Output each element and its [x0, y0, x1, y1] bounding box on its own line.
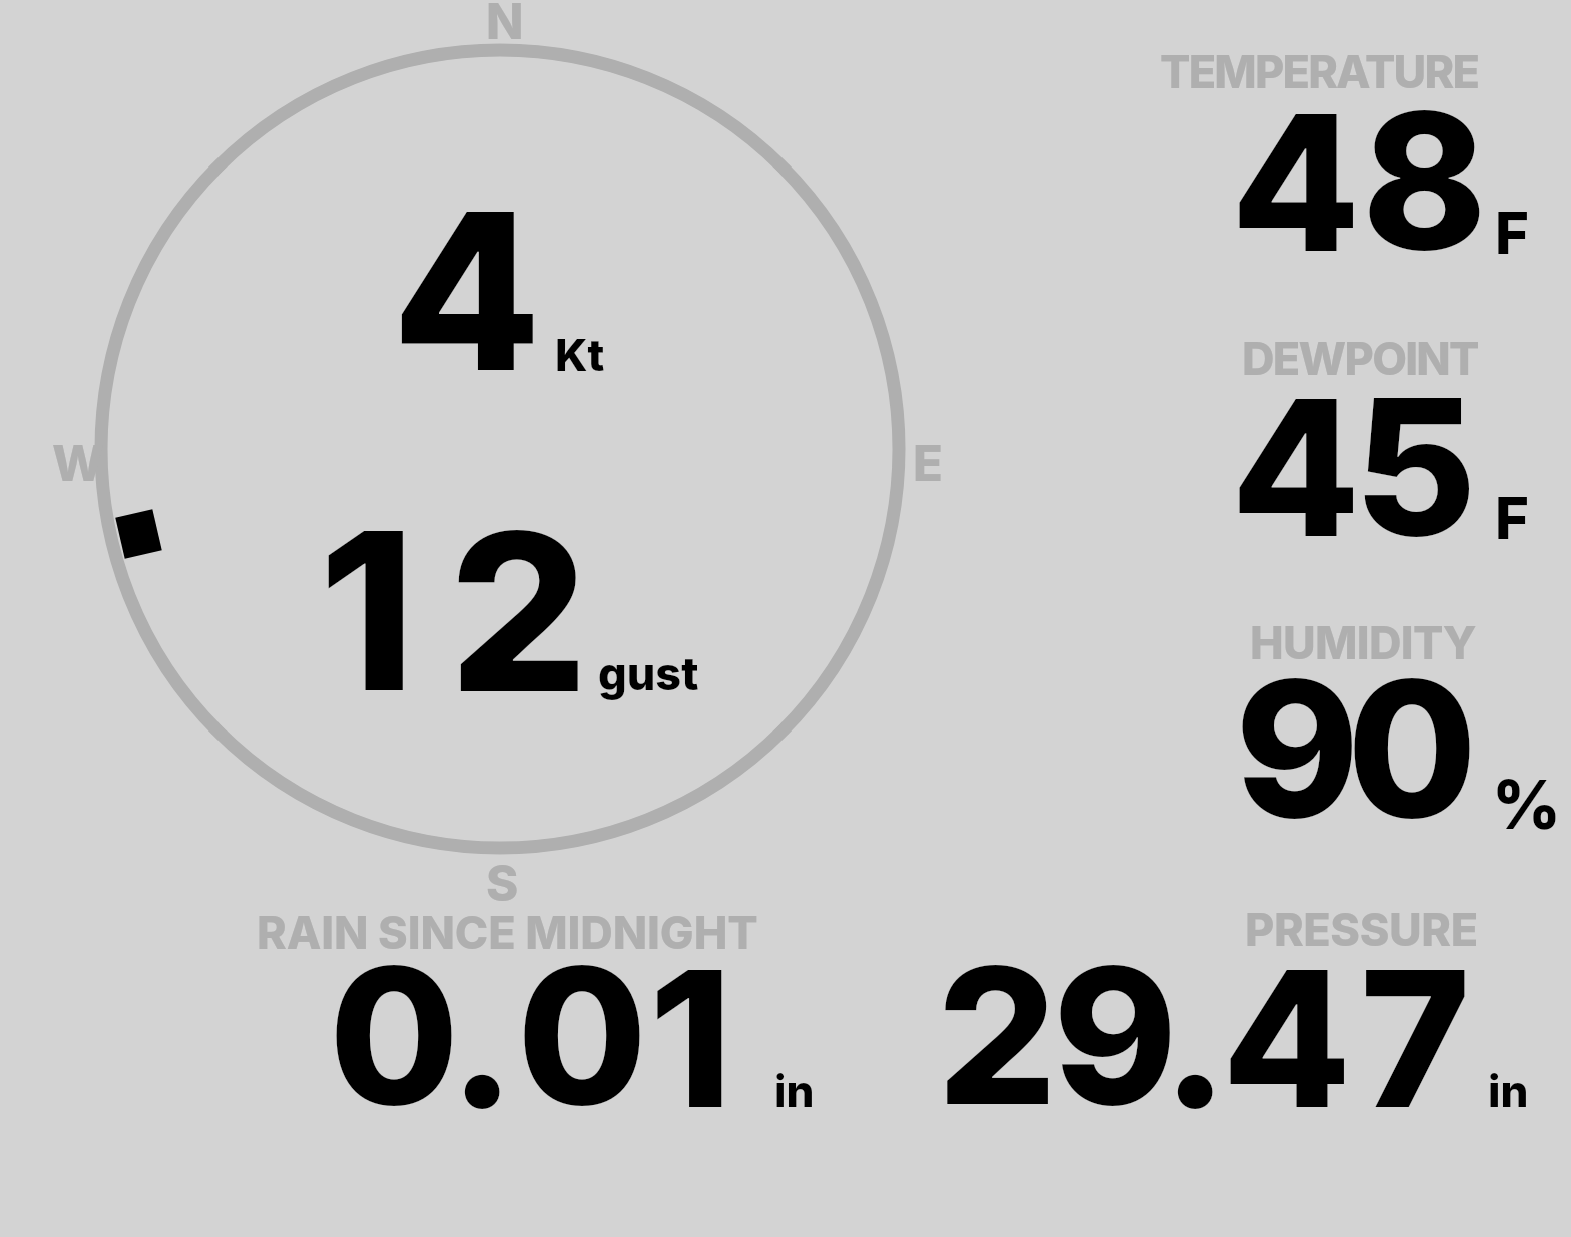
staticText: in: [1488, 1064, 1529, 1117]
staticText: %: [1492, 764, 1561, 845]
staticText: 2: [937, 922, 1057, 1149]
staticText: 4: [392, 160, 542, 423]
staticText: .: [449, 925, 516, 1152]
button[interactable]: Humidity 90 percent: [1100, 600, 1571, 860]
staticText: 0: [1347, 635, 1478, 862]
staticText: 7: [1360, 925, 1471, 1152]
staticText: RAIN SINCE MIDNIGHT: [257, 905, 758, 959]
staticText: S: [486, 854, 519, 913]
staticText: DEWPOINT: [1242, 331, 1478, 385]
staticText: gust: [598, 646, 699, 700]
staticText: 4: [1231, 354, 1361, 581]
staticText: W: [52, 434, 104, 493]
staticText: 2: [449, 480, 589, 744]
staticText: F: [1495, 198, 1529, 268]
button[interactable]: Dewpoint 45 F: [1100, 310, 1571, 575]
staticText: 0: [329, 922, 460, 1149]
button[interactable]: Pressure 29.47 in: [900, 890, 1571, 1140]
staticText: TEMPERATURE: [1160, 44, 1479, 98]
staticText: 9: [1053, 922, 1178, 1149]
staticText: Kt: [555, 328, 605, 381]
button[interactable]: Temperature 48 F: [1100, 30, 1571, 290]
staticText: 1: [319, 479, 416, 743]
staticText: N: [486, 0, 524, 51]
staticText: 4: [1222, 925, 1352, 1152]
staticText: 9: [1235, 635, 1360, 862]
staticText: 0: [517, 922, 648, 1149]
staticText: F: [1495, 483, 1529, 553]
staticText: PRESSURE: [1245, 902, 1478, 956]
staticText: 5: [1354, 353, 1477, 580]
staticText: 4: [1231, 69, 1361, 296]
staticText: in: [774, 1064, 815, 1117]
staticText: E: [913, 434, 943, 493]
staticText: 1: [649, 925, 732, 1152]
button[interactable]: Wind 4 knots, gusting 12, from west sout…: [80, 0, 960, 900]
staticText: .: [1162, 925, 1229, 1152]
staticText: 8: [1362, 67, 1487, 294]
button[interactable]: Rain since midnight 0.01 in: [200, 890, 860, 1140]
staticText: HUMIDITY: [1250, 615, 1476, 669]
